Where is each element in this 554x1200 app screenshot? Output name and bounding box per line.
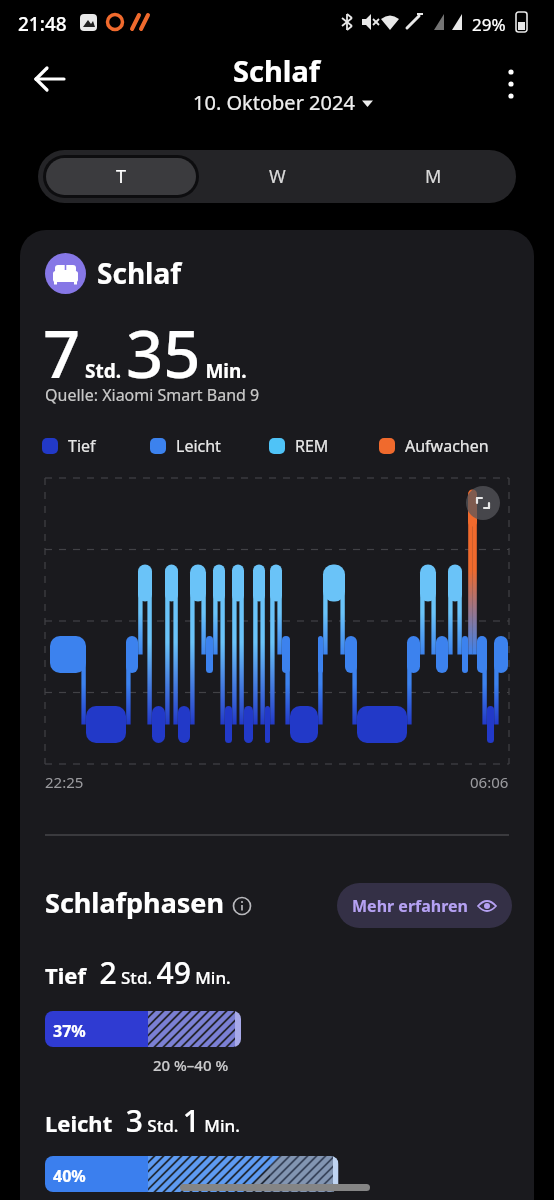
staticText: Schlaf xyxy=(233,51,321,90)
staticText: T xyxy=(116,164,127,189)
button[interactable] xyxy=(26,55,74,103)
staticText: 37% xyxy=(53,1020,86,1042)
button[interactable] xyxy=(490,63,532,105)
staticText: Schlafphasen xyxy=(45,884,225,921)
staticText: M xyxy=(425,164,442,189)
staticText: Schlaf xyxy=(97,254,182,292)
staticText: 20 %–40 % xyxy=(153,1055,229,1075)
button[interactable]: Mehr erfahren xyxy=(337,883,512,928)
staticText: 22:25 xyxy=(45,772,84,792)
staticText: 10. Oktober 2024 xyxy=(193,89,355,116)
button[interactable] xyxy=(466,486,500,520)
staticText: Mehr erfahren xyxy=(352,895,469,917)
staticText: 21:48 xyxy=(18,11,67,37)
staticText: 7 Std. 35 Min. xyxy=(43,309,247,398)
staticText: Quelle: Xiaomi Smart Band 9 xyxy=(45,384,260,406)
button[interactable]: M xyxy=(355,150,511,203)
staticText: Tief xyxy=(68,435,96,457)
staticText: Aufwachen xyxy=(405,435,489,457)
staticText: Leicht 3 Std. 1 Min. xyxy=(45,1100,240,1141)
staticText: REM xyxy=(295,435,329,457)
button[interactable]: W xyxy=(199,150,355,203)
staticText: Leicht xyxy=(176,435,221,457)
staticText: 29% xyxy=(472,13,506,36)
button[interactable]: T xyxy=(43,155,199,198)
staticText: 06:06 xyxy=(470,772,509,792)
button[interactable]: 10. Oktober 2024 xyxy=(193,89,373,116)
staticText: 40% xyxy=(53,1165,86,1187)
staticText: W xyxy=(269,164,286,189)
staticText: Tief 2 Std. 49 Min. xyxy=(45,952,231,993)
